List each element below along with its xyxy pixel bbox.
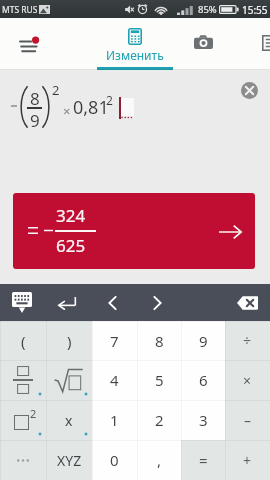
button[interactable]: Square xyxy=(0,400,46,440)
staticText: 9 xyxy=(199,331,208,351)
button[interactable]: Backspace xyxy=(233,289,262,316)
button[interactable]: XYZ xyxy=(46,440,92,480)
button[interactable]: 7 xyxy=(92,321,137,360)
staticText: 5 xyxy=(155,370,164,390)
button[interactable]: × xyxy=(225,360,270,400)
staticText: 8 xyxy=(30,87,40,110)
staticText: 4 xyxy=(110,370,119,390)
staticText: 324 xyxy=(56,204,86,227)
staticText: 15:55 xyxy=(242,3,268,17)
button[interactable]: ( xyxy=(0,321,46,360)
button[interactable]: 6 xyxy=(181,360,225,400)
button[interactable]: – xyxy=(225,400,270,440)
staticText: 6 xyxy=(199,370,208,390)
staticText: 2 xyxy=(30,406,37,421)
button[interactable]: ) xyxy=(46,321,92,360)
staticText: 2 xyxy=(52,81,60,99)
staticText: 1 xyxy=(110,410,119,430)
staticText: ( xyxy=(21,331,26,351)
staticText: × xyxy=(63,102,71,120)
staticText: + xyxy=(243,451,252,470)
staticText: , xyxy=(157,450,162,470)
staticText: 2 xyxy=(155,410,164,430)
button[interactable]: + xyxy=(225,440,270,480)
button[interactable]: Camera xyxy=(173,18,233,70)
button[interactable]: Clear xyxy=(240,81,258,99)
button[interactable]: 4 xyxy=(92,360,137,400)
staticText: 0,81 xyxy=(73,95,109,120)
staticText: 9 xyxy=(30,109,40,132)
button[interactable]: Square root xyxy=(46,360,92,400)
button[interactable]: ÷ xyxy=(225,321,270,360)
staticText: 3 xyxy=(199,410,208,430)
staticText: 8 xyxy=(155,331,164,351)
staticText: 2 xyxy=(106,92,113,108)
button[interactable]: Hide keyboard xyxy=(10,288,34,317)
staticText: XYZ xyxy=(57,451,82,470)
staticText: 85% xyxy=(198,3,217,16)
staticText: 7 xyxy=(110,331,119,351)
button[interactable]: Изменить xyxy=(97,18,173,70)
button[interactable]: Previous xyxy=(99,290,125,315)
button[interactable]: 0 xyxy=(92,440,137,480)
staticText: × xyxy=(243,371,252,390)
staticText: 625 xyxy=(56,234,86,257)
button[interactable]: , xyxy=(137,440,181,480)
button[interactable]: = xyxy=(181,440,225,480)
staticText: ) xyxy=(67,331,72,351)
button[interactable]: 8 xyxy=(137,321,181,360)
staticText: x xyxy=(65,411,73,430)
staticText: 0 xyxy=(110,450,119,470)
button[interactable]: Enter xyxy=(53,290,80,315)
button[interactable]: 9 xyxy=(181,321,225,360)
staticText: Изменить xyxy=(106,47,164,63)
staticText: – xyxy=(244,411,251,430)
button[interactable]: x xyxy=(46,400,92,440)
button[interactable]: 5 xyxy=(137,360,181,400)
button[interactable]: 324 xyxy=(13,193,255,269)
button[interactable]: Fraction xyxy=(0,360,46,400)
button[interactable]: Menu xyxy=(0,18,97,70)
staticText: = xyxy=(199,450,208,470)
button[interactable]: Notes xyxy=(233,18,270,70)
button[interactable]: Next xyxy=(144,290,170,315)
button[interactable]: 1 xyxy=(92,400,137,440)
staticText: ÷ xyxy=(243,331,252,350)
button[interactable]: 3 xyxy=(181,400,225,440)
button[interactable]: More xyxy=(0,440,46,480)
staticText: MTS RUS xyxy=(2,4,38,16)
button[interactable]: 2 xyxy=(137,400,181,440)
